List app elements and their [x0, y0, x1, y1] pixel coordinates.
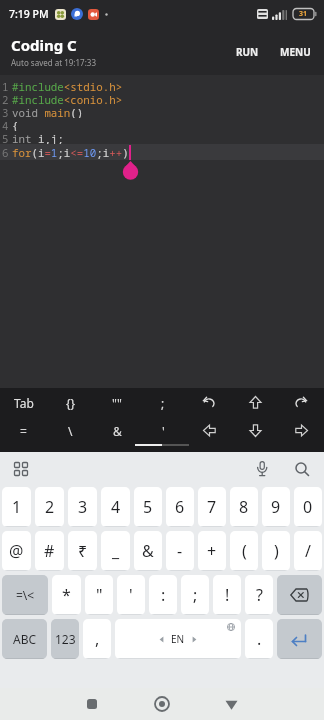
- button[interactable]: ABC: [2, 619, 47, 659]
- button[interactable]: =\<: [2, 575, 48, 615]
- button[interactable]: "": [94, 388, 140, 417]
- staticText: &: [142, 540, 154, 562]
- staticText: ?: [256, 584, 263, 606]
- button[interactable]: !: [213, 575, 241, 615]
- staticText: 8: [239, 496, 249, 518]
- staticText: -: [177, 540, 183, 562]
- button[interactable]: 5: [134, 487, 162, 527]
- button[interactable]: #: [35, 531, 64, 571]
- button[interactable]: 1: [2, 487, 31, 527]
- button[interactable]: [278, 388, 324, 417]
- button[interactable]: MENU: [274, 39, 317, 65]
- button[interactable]: ): [262, 531, 290, 571]
- staticText: 5: [143, 496, 153, 518]
- staticText: 6: [175, 496, 185, 518]
- staticText: ': [129, 584, 133, 606]
- staticText: ₹: [78, 540, 88, 562]
- staticText: 1: [12, 496, 22, 518]
- staticText: 7:19 PM: [9, 7, 49, 21]
- button[interactable]: =: [0, 417, 47, 444]
- button[interactable]: [186, 417, 232, 444]
- button[interactable]: 123: [51, 619, 79, 659]
- staticText: _: [112, 540, 120, 562]
- staticText: int i,j;: [12, 131, 64, 144]
- staticText: RUN: [236, 45, 259, 59]
- staticText: /: [305, 540, 311, 562]
- button[interactable]: [278, 417, 324, 444]
- staticText: @: [9, 540, 24, 562]
- staticText: 7: [207, 496, 217, 518]
- button[interactable]: .: [245, 619, 273, 659]
- button[interactable]: {}: [47, 388, 94, 417]
- button[interactable]: 0: [294, 487, 322, 527]
- button[interactable]: @: [2, 531, 31, 571]
- button[interactable]: RUN: [230, 39, 265, 65]
- button[interactable]: [225, 698, 238, 711]
- button[interactable]: ₹: [68, 531, 97, 571]
- button[interactable]: *: [52, 575, 81, 615]
- button[interactable]: [277, 575, 322, 615]
- button[interactable]: ?: [245, 575, 273, 615]
- staticText: 4: [111, 496, 121, 518]
- button[interactable]: Tab: [0, 388, 47, 417]
- staticText: #: [44, 540, 55, 562]
- button[interactable]: ": [85, 575, 113, 615]
- button[interactable]: :: [149, 575, 177, 615]
- staticText: \: [68, 423, 73, 439]
- staticText: :: [161, 584, 166, 606]
- staticText: ABC: [13, 631, 37, 647]
- staticText: =: [20, 423, 27, 439]
- staticText: ,: [95, 628, 100, 650]
- button[interactable]: +: [198, 531, 226, 571]
- button[interactable]: &: [134, 531, 162, 571]
- staticText: Tab: [14, 395, 34, 411]
- button[interactable]: ;: [181, 575, 209, 615]
- button[interactable]: (: [230, 531, 258, 571]
- staticText: "": [112, 395, 122, 411]
- button[interactable]: [295, 462, 310, 477]
- staticText: &: [113, 423, 122, 439]
- staticText: ': [162, 423, 165, 439]
- button[interactable]: 4: [101, 487, 130, 527]
- button[interactable]: [153, 695, 171, 713]
- staticText: for(i=1;i<=10;i++): [12, 145, 129, 160]
- button[interactable]: [186, 388, 232, 417]
- button[interactable]: 7: [198, 487, 226, 527]
- button[interactable]: [232, 388, 278, 417]
- button[interactable]: 3: [68, 487, 97, 527]
- button[interactable]: 2: [35, 487, 64, 527]
- button[interactable]: /: [294, 531, 322, 571]
- staticText: ;: [161, 395, 165, 411]
- staticText: 5: [2, 131, 9, 144]
- staticText: *: [62, 584, 71, 606]
- staticText: 123: [55, 631, 76, 647]
- button[interactable]: [232, 417, 278, 444]
- button[interactable]: &: [94, 417, 140, 444]
- button[interactable]: EN: [115, 619, 241, 659]
- button[interactable]: 9: [262, 487, 290, 527]
- staticText: 0: [303, 496, 313, 518]
- button[interactable]: \: [47, 417, 94, 444]
- staticText: !: [225, 584, 230, 606]
- button[interactable]: ;: [140, 388, 186, 417]
- staticText: {}: [66, 395, 76, 411]
- button[interactable]: ': [140, 417, 186, 444]
- button[interactable]: [255, 461, 269, 477]
- button[interactable]: 6: [166, 487, 194, 527]
- button[interactable]: _: [101, 531, 130, 571]
- button[interactable]: [86, 698, 98, 710]
- button[interactable]: ,: [83, 619, 111, 659]
- staticText: +: [207, 540, 217, 562]
- staticText: 6: [2, 145, 9, 160]
- staticText: 2: [45, 496, 55, 518]
- staticText: ": [96, 584, 103, 606]
- button[interactable]: 8: [230, 487, 258, 527]
- staticText: void main(): [12, 105, 84, 118]
- staticText: 31: [299, 9, 308, 19]
- staticText: 3: [2, 105, 9, 118]
- staticText: 4: [2, 118, 9, 131]
- button[interactable]: -: [166, 531, 194, 571]
- staticText: 9: [271, 496, 281, 518]
- button[interactable]: ': [117, 575, 145, 615]
- button[interactable]: [277, 619, 322, 659]
